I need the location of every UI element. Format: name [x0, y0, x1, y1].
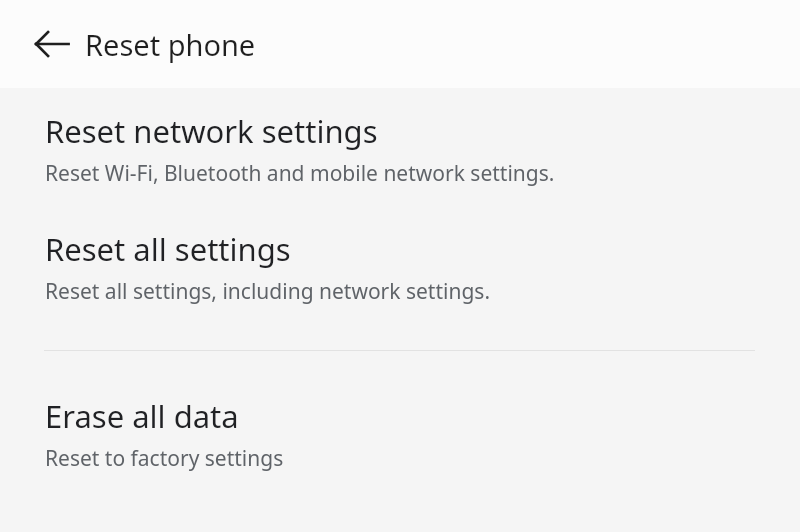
staticText: Reset to factory settings — [45, 444, 284, 473]
staticText: Reset network settings — [45, 110, 378, 152]
button[interactable]: Back — [26, 18, 78, 70]
button[interactable]: Reset network settings — [0, 110, 800, 188]
button[interactable]: Erase all data — [0, 395, 800, 473]
staticText: Reset all settings, including network se… — [45, 277, 491, 306]
staticText: Reset all settings — [45, 228, 291, 270]
staticText: Reset Wi-Fi, Bluetooth and mobile networ… — [45, 159, 555, 188]
staticText: Reset phone — [85, 25, 256, 64]
staticText: Erase all data — [45, 395, 239, 437]
button[interactable]: Reset all settings — [0, 228, 800, 306]
